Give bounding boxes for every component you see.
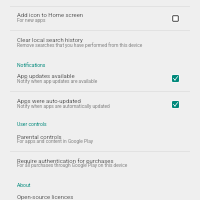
staticText: Require authentication for purchases (17, 158, 114, 165)
button[interactable]: App updates available (0, 68, 200, 91)
button[interactable]: Require authentication for purchases (0, 152, 200, 175)
staticText: Notifications (17, 62, 46, 68)
button[interactable]: Add icon to Home screen (0, 7, 200, 30)
other: Checkbox, checked (170, 99, 181, 110)
staticText: Open-source licences (17, 194, 74, 200)
staticText: For apps and content in Google Play (17, 139, 94, 145)
button[interactable]: Clear local search history (0, 31, 200, 54)
other: Checkbox, checked (170, 73, 181, 84)
button[interactable]: Apps were auto-updated (0, 92, 200, 115)
staticText: About (17, 182, 31, 188)
staticText: Remove searches that you have performed … (17, 43, 143, 49)
other: Checkbox, unchecked (170, 13, 181, 24)
staticText: Clear local search history (17, 37, 83, 44)
staticText: Add icon to Home screen (17, 12, 84, 19)
staticText: Parental controls (17, 134, 62, 141)
staticText: App updates available (17, 73, 75, 80)
button[interactable]: Parental controls (0, 128, 200, 151)
staticText: Apps were auto-updated (17, 98, 81, 105)
staticText: Notify when apps are automatically updat… (17, 104, 110, 110)
button[interactable]: Open-source licences (0, 189, 200, 200)
staticText: User controls (17, 121, 47, 127)
staticText: For new apps (17, 18, 46, 24)
staticText: For all purchases through Google Play on… (17, 163, 128, 169)
staticText: Notify when app updates are available (17, 79, 98, 85)
